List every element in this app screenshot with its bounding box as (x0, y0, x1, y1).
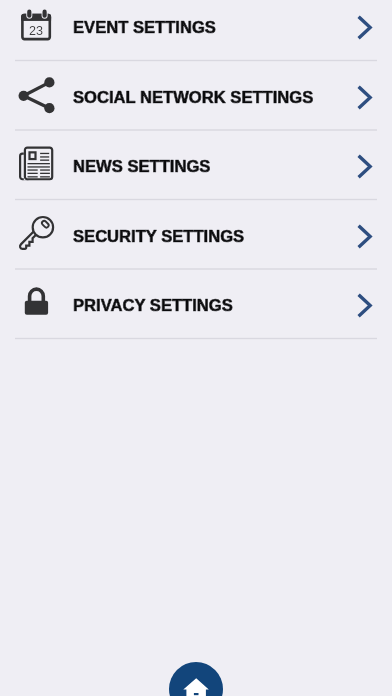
staticText: PRIVACY SETTINGS (73, 296, 233, 315)
staticText: EVENT SETTINGS (73, 18, 216, 37)
staticText: SECURITY SETTINGS (73, 227, 245, 246)
staticText: NEWS SETTINGS (73, 157, 211, 176)
staticText: SOCIAL NETWORK SETTINGS (73, 88, 314, 107)
button[interactable]: Home (169, 662, 223, 696)
staticText: SOCIAL NETWORK SETTINGS (73, 88, 314, 107)
button[interactable]: SECURITY SETTINGS (0, 200, 392, 270)
staticText: EVENT SETTINGS (73, 18, 216, 37)
staticText: SECURITY SETTINGS (73, 227, 245, 246)
button[interactable]: SOCIAL NETWORK SETTINGS (0, 61, 392, 131)
staticText: 23 (29, 24, 44, 38)
button[interactable]: 23 (0, 0, 392, 61)
button[interactable]: PRIVACY SETTINGS (0, 269, 392, 339)
staticText: NEWS SETTINGS (73, 157, 211, 176)
staticText: PRIVACY SETTINGS (73, 296, 233, 315)
button[interactable]: NEWS SETTINGS (0, 130, 392, 200)
